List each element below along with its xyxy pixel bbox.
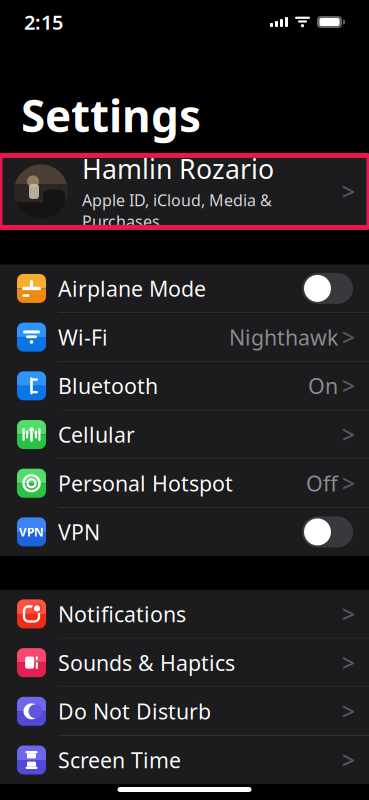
staticText: Nighthawk [229, 323, 338, 351]
staticText: > [342, 419, 355, 450]
staticText: Bluetooth [58, 372, 158, 400]
staticText: 2:15 [24, 9, 63, 35]
button[interactable]: Do Not Disturb [0, 687, 369, 736]
button[interactable]: VPN [0, 508, 369, 556]
staticText: > [342, 468, 355, 498]
staticText: > [342, 176, 355, 206]
staticText: > [342, 599, 355, 629]
staticText: Settings [21, 86, 201, 144]
staticText: Do Not Disturb [58, 697, 211, 725]
staticText: Airplane Mode [58, 274, 206, 303]
button[interactable]: Hamlin Rozario [0, 155, 369, 227]
staticText: VPN [58, 518, 100, 546]
staticText: Wi-Fi [58, 323, 108, 351]
button[interactable]: Wi-Fi [0, 313, 369, 362]
staticText: Apple ID, iCloud, Media & Purchases [82, 189, 272, 232]
staticText: On [308, 372, 338, 400]
button[interactable]: Personal Hotspot [0, 459, 369, 508]
button[interactable]: Screen Time [0, 736, 369, 784]
button[interactable]: Notifications [0, 590, 369, 639]
staticText: > [342, 648, 355, 678]
staticText: Off [306, 469, 338, 497]
staticText: Personal Hotspot [58, 469, 233, 497]
staticText: Notifications [58, 600, 186, 628]
staticText: Hamlin Rozario [82, 151, 274, 186]
staticText: > [342, 696, 355, 726]
staticText: > [342, 371, 355, 401]
staticText: VPN [19, 524, 44, 540]
button[interactable]: Airplane Mode [0, 264, 369, 313]
staticText: > [342, 322, 355, 352]
button[interactable]: Bluetooth [0, 362, 369, 410]
button[interactable]: Sounds & Haptics [0, 639, 369, 687]
staticText: > [342, 745, 355, 775]
staticText: Screen Time [58, 746, 181, 774]
staticText: Sounds & Haptics [58, 648, 235, 677]
button[interactable]: Cellular [0, 410, 369, 459]
staticText: Cellular [58, 420, 135, 449]
